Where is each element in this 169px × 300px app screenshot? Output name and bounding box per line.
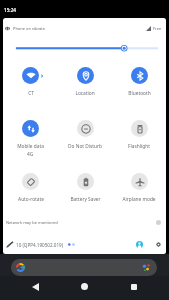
staticText: 15:24 <box>4 7 17 13</box>
button[interactable]: Back <box>28 279 43 294</box>
staticText: Location <box>75 90 95 97</box>
button[interactable]: Battery Saver <box>58 163 112 216</box>
button[interactable]: CT <box>3 57 58 110</box>
button[interactable]: Bluetooth <box>112 57 166 110</box>
staticText: Network may be monitored <box>6 220 58 225</box>
staticText: Mobile data <box>17 143 44 150</box>
staticText: 10 (QPP4.190502.019) <box>16 242 64 248</box>
button[interactable]: Airplane mode <box>112 163 166 216</box>
button[interactable]: User account <box>134 239 144 249</box>
button[interactable]: Settings <box>153 239 163 249</box>
button[interactable]: Auto-rotate <box>3 163 58 216</box>
staticText: Free <box>153 26 162 31</box>
staticText: Phone on vibrate <box>13 26 46 31</box>
staticText: Do Not Disturb <box>68 143 102 150</box>
staticText: Airplane mode <box>122 196 156 203</box>
button[interactable]: Recent apps <box>126 279 141 294</box>
staticText: Bluetooth <box>128 90 151 97</box>
staticText: Auto-rotate <box>18 196 44 203</box>
button[interactable]: Home <box>77 279 92 294</box>
staticText: Battery Saver <box>70 196 101 203</box>
staticText: CT <box>28 90 34 97</box>
button[interactable]: Do Not Disturb <box>58 110 112 163</box>
button[interactable]: Mobile data <box>3 110 58 163</box>
button[interactable]: Location <box>58 57 112 110</box>
button[interactable]: Brightness <box>3 39 166 57</box>
staticText: Flashlight <box>128 143 150 150</box>
button[interactable] <box>11 259 157 276</box>
staticText: 4G <box>27 151 34 158</box>
button[interactable]: 10 (QPP4.190502.019) <box>6 241 75 248</box>
button[interactable]: Flashlight <box>112 110 166 163</box>
